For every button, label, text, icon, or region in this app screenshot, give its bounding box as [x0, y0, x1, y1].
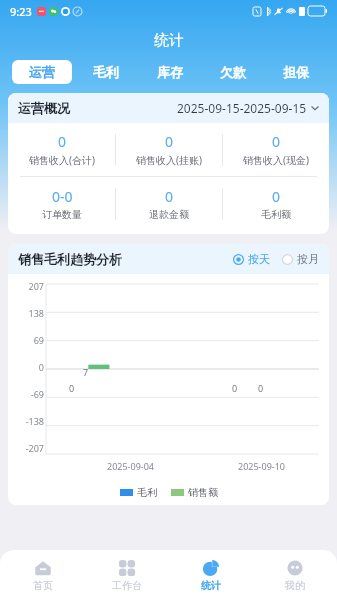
- staticText: 我的: [285, 579, 305, 592]
- staticText: 按天: [248, 252, 270, 266]
- button[interactable]: 0: [223, 177, 329, 230]
- staticText: 0: [38, 361, 44, 373]
- staticText: 毛利: [93, 64, 119, 80]
- button[interactable]: 运营: [12, 60, 72, 84]
- staticText: 首页: [33, 579, 53, 592]
- staticText: 工作台: [112, 579, 142, 592]
- button[interactable]: 欠款: [201, 60, 264, 84]
- staticText: 统计: [201, 579, 221, 592]
- staticText: 毛利: [137, 486, 157, 499]
- button[interactable]: 0: [223, 123, 329, 176]
- staticText: 销售收入(挂账): [136, 153, 202, 167]
- button[interactable]: 我的: [253, 550, 337, 600]
- button[interactable]: 统计: [169, 550, 253, 600]
- button[interactable]: 0: [116, 177, 222, 230]
- button[interactable]: 工作台: [85, 550, 169, 600]
- staticText: 69: [33, 334, 44, 346]
- staticText: 138: [28, 307, 44, 319]
- staticText: 担保: [283, 64, 309, 80]
- staticText: -207: [25, 442, 44, 454]
- staticText: 0: [165, 187, 174, 206]
- staticText: 0: [58, 132, 67, 151]
- button[interactable]: 0-0: [8, 177, 115, 230]
- staticText: 0: [258, 382, 264, 394]
- button[interactable]: 按天: [233, 252, 270, 266]
- button[interactable]: 担保: [264, 60, 327, 84]
- staticText: 欠款: [220, 64, 246, 80]
- staticText: 订单数量: [42, 208, 82, 221]
- button[interactable]: 2025-09-15-2025-09-15: [177, 100, 319, 116]
- button[interactable]: 首页: [0, 550, 85, 600]
- staticText: 2025-09-15-2025-09-15: [177, 100, 307, 116]
- staticText: 0: [69, 382, 75, 394]
- staticText: -69: [30, 388, 44, 400]
- staticText: 0-0: [52, 187, 73, 206]
- staticText: 销售额: [188, 486, 218, 499]
- staticText: 销售收入(合计): [29, 153, 95, 167]
- staticText: 2025-09-10: [238, 460, 285, 472]
- staticText: 运营: [29, 64, 55, 80]
- staticText: 运营概况: [18, 100, 70, 116]
- staticText: 2025-09-04: [107, 460, 154, 472]
- staticText: 销售收入(现金): [243, 153, 309, 167]
- staticText: 0: [272, 187, 281, 206]
- staticText: 0: [272, 132, 281, 151]
- staticText: 0: [232, 382, 238, 394]
- staticText: 按月: [297, 252, 319, 266]
- staticText: 207: [28, 280, 44, 292]
- staticText: 7: [83, 366, 89, 378]
- staticText: 销售毛利趋势分析: [18, 251, 122, 267]
- staticText: 毛利额: [261, 208, 291, 221]
- button[interactable]: 库存: [138, 60, 201, 84]
- button[interactable]: 0: [8, 123, 115, 176]
- staticText: 退款金额: [149, 208, 189, 221]
- button[interactable]: 0: [116, 123, 222, 176]
- staticText: 0: [165, 132, 174, 151]
- button[interactable]: 按月: [282, 252, 319, 266]
- staticText: 库存: [157, 64, 183, 80]
- staticText: -138: [25, 415, 44, 427]
- button[interactable]: 毛利: [74, 60, 138, 84]
- staticText: 9:23: [10, 4, 32, 19]
- staticText: 统计: [154, 31, 184, 50]
